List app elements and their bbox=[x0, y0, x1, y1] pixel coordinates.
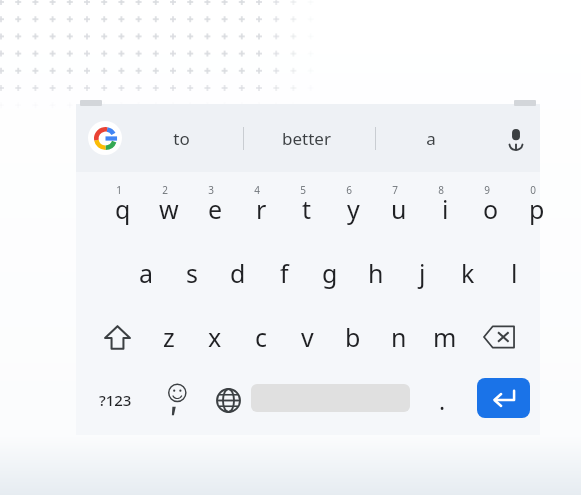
button[interactable]: Change language bbox=[202, 371, 254, 429]
staticText: u bbox=[391, 192, 407, 226]
button[interactable]: n bbox=[376, 306, 422, 368]
staticText: n bbox=[391, 320, 407, 354]
staticText: c bbox=[255, 320, 268, 354]
button[interactable]: to bbox=[131, 120, 231, 156]
button[interactable]: better bbox=[256, 120, 356, 156]
staticText: x bbox=[208, 320, 222, 354]
staticText: j bbox=[419, 256, 426, 290]
button[interactable]: q bbox=[100, 178, 146, 240]
staticText: i bbox=[442, 192, 449, 226]
button[interactable]: g bbox=[307, 242, 353, 304]
staticText: g bbox=[322, 256, 338, 290]
staticText: better bbox=[282, 127, 331, 150]
staticText: 0 bbox=[530, 183, 536, 197]
staticText: 8 bbox=[438, 183, 444, 197]
button[interactable]: j bbox=[399, 242, 445, 304]
staticText: 2 bbox=[162, 183, 168, 197]
staticText: 5 bbox=[300, 183, 306, 197]
staticText: k bbox=[461, 256, 475, 290]
staticText: p bbox=[529, 192, 545, 226]
staticText: b bbox=[345, 320, 361, 354]
staticText: o bbox=[483, 192, 499, 226]
staticText: t bbox=[302, 192, 312, 226]
staticText: v bbox=[301, 320, 314, 354]
button[interactable]: w bbox=[146, 178, 192, 240]
staticText: 3 bbox=[208, 183, 214, 197]
staticText: 1 bbox=[116, 183, 122, 197]
button[interactable]: x bbox=[192, 306, 238, 368]
button[interactable]: z bbox=[146, 306, 192, 368]
button[interactable]: c bbox=[238, 306, 284, 368]
button[interactable]: r bbox=[238, 178, 284, 240]
button[interactable]: h bbox=[353, 242, 399, 304]
button[interactable]: e bbox=[192, 178, 238, 240]
staticText: s bbox=[186, 256, 198, 290]
button[interactable]: Emoji and comma bbox=[150, 371, 202, 429]
staticText: q bbox=[115, 192, 131, 226]
staticText: w bbox=[159, 192, 179, 226]
staticText: y bbox=[347, 192, 360, 226]
staticText: l bbox=[511, 256, 518, 290]
staticText: e bbox=[208, 192, 223, 226]
button[interactable]: d bbox=[215, 242, 261, 304]
staticText: 6 bbox=[346, 183, 352, 197]
button[interactable]: m bbox=[422, 306, 468, 368]
staticText: r bbox=[256, 192, 267, 226]
button[interactable]: t bbox=[284, 178, 330, 240]
button[interactable]: k bbox=[445, 242, 491, 304]
staticText: 9 bbox=[484, 183, 490, 197]
button[interactable]: f bbox=[261, 242, 307, 304]
button[interactable]: Enter bbox=[477, 378, 530, 418]
button[interactable]: a bbox=[123, 242, 169, 304]
staticText: h bbox=[368, 256, 384, 290]
staticText: 4 bbox=[254, 183, 260, 197]
staticText: to bbox=[173, 127, 190, 150]
staticText: m bbox=[433, 320, 457, 354]
staticText: z bbox=[163, 320, 175, 354]
button[interactable]: . bbox=[420, 371, 464, 429]
button[interactable]: Voice input bbox=[500, 123, 532, 155]
button[interactable]: s bbox=[169, 242, 215, 304]
staticText: 7 bbox=[392, 183, 398, 197]
button[interactable]: a bbox=[381, 120, 481, 156]
staticText: f bbox=[280, 256, 289, 290]
button[interactable]: Backspace bbox=[470, 306, 528, 368]
staticText: d bbox=[230, 256, 246, 290]
button[interactable]: o bbox=[468, 178, 514, 240]
button[interactable]: u bbox=[376, 178, 422, 240]
button[interactable]: v bbox=[284, 306, 330, 368]
button[interactable]: l bbox=[491, 242, 537, 304]
button[interactable]: y bbox=[330, 178, 376, 240]
staticText: . bbox=[439, 385, 446, 416]
staticText: ?123 bbox=[99, 390, 132, 410]
button[interactable]: ?123 bbox=[84, 371, 146, 429]
button[interactable]: p bbox=[514, 178, 560, 240]
button[interactable]: b bbox=[330, 306, 376, 368]
button[interactable]: Shift bbox=[88, 306, 146, 368]
staticText: a bbox=[426, 127, 436, 150]
button[interactable]: Google bbox=[88, 121, 122, 155]
staticText: a bbox=[139, 256, 154, 290]
button[interactable]: i bbox=[422, 178, 468, 240]
